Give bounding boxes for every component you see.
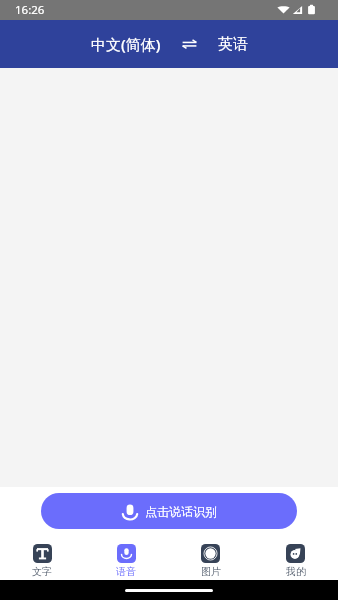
staticText: 语音 xyxy=(116,565,136,578)
button[interactable]: 中文(简体) xyxy=(89,28,163,60)
button[interactable]: 文字 xyxy=(0,536,84,578)
staticText: 点击说话识别 xyxy=(145,504,217,519)
button[interactable]: Swap languages xyxy=(163,32,216,56)
staticText: 图片 xyxy=(201,565,221,578)
button[interactable]: 语音 xyxy=(84,536,168,578)
staticText: 中文(简体) xyxy=(91,34,161,54)
button[interactable]: 我的 xyxy=(253,536,338,578)
staticText: 我的 xyxy=(286,565,306,578)
staticText: 文字 xyxy=(32,565,52,578)
button[interactable]: 图片 xyxy=(168,536,253,578)
staticText: 英语 xyxy=(218,35,248,54)
button[interactable]: 英语 xyxy=(216,29,250,60)
staticText: 16:26 xyxy=(15,2,45,18)
button[interactable]: 点击说话识别 xyxy=(41,493,297,529)
